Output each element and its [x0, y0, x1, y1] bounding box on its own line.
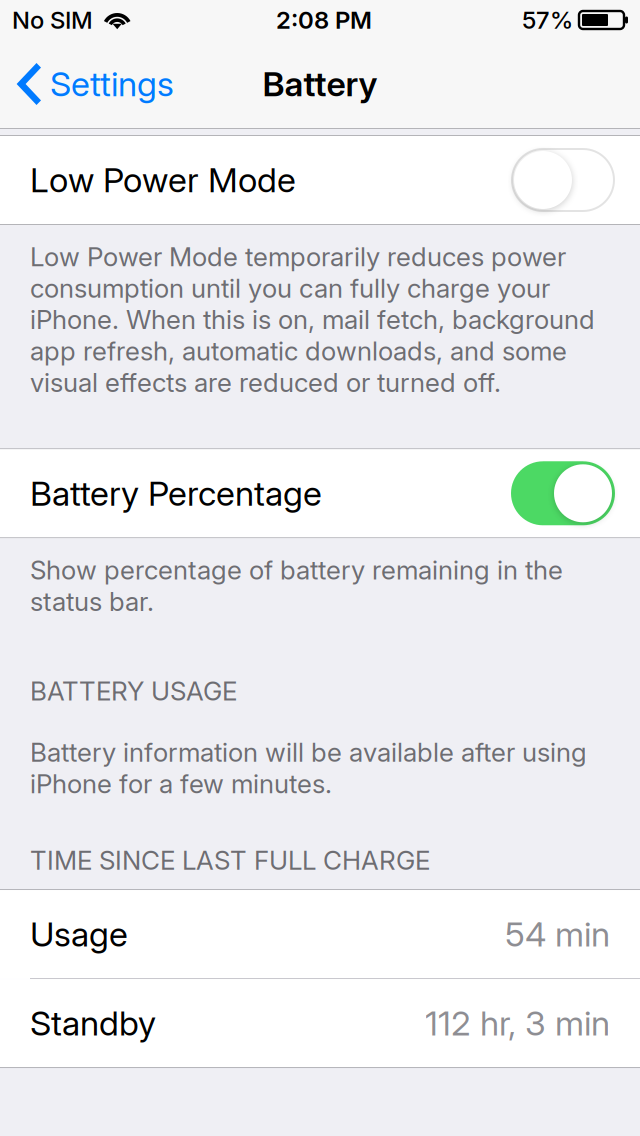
staticText: 54 min: [505, 913, 610, 955]
staticText: Battery: [262, 63, 377, 104]
staticText: Show percentage of battery remaining in …: [30, 554, 563, 617]
staticText: 112 hr, 3 min: [425, 1002, 610, 1044]
staticText: 2:08 PM: [276, 5, 372, 34]
staticText: 57%: [522, 5, 573, 34]
button[interactable]: Standby: [0, 979, 640, 1067]
staticText: Low Power Mode: [30, 159, 296, 200]
staticText: Battery information will be available af…: [30, 737, 587, 800]
staticText: Standby: [30, 1002, 156, 1044]
button[interactable]: Battery Percentage: [0, 449, 640, 537]
staticText: Settings: [50, 63, 174, 104]
staticText: TIME SINCE LAST FULL CHARGE: [30, 845, 430, 876]
button[interactable]: Usage: [0, 890, 640, 978]
staticText: No SIM: [12, 5, 93, 34]
staticText: Low Power Mode temporarily reduces power…: [30, 241, 595, 398]
staticText: Battery Percentage: [30, 473, 322, 514]
staticText: BATTERY USAGE: [30, 675, 237, 707]
button[interactable]: Low Power Mode: [0, 136, 640, 224]
staticText: Usage: [30, 913, 128, 955]
button[interactable]: Settings: [0, 40, 188, 128]
